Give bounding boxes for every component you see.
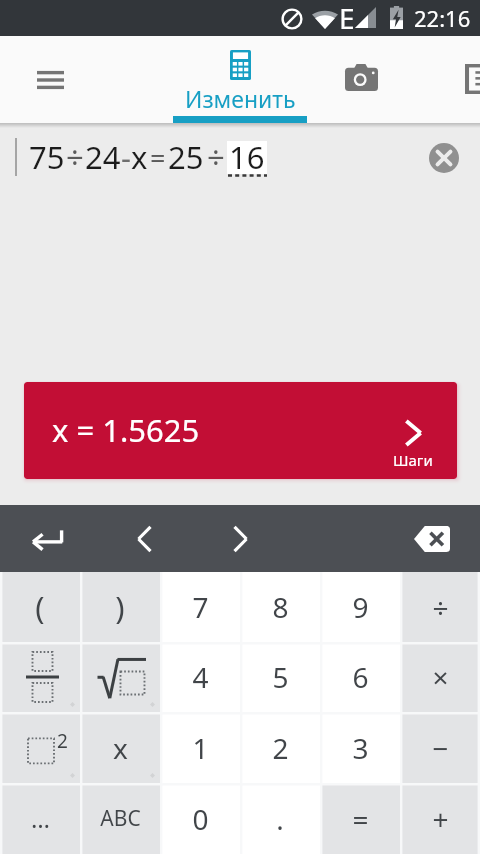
button[interactable]: (: [0, 572, 80, 642]
staticText: 7: [192, 588, 209, 626]
button[interactable]: Power: [0, 712, 80, 783]
staticText: 25: [168, 136, 204, 178]
button[interactable]: x: [80, 712, 160, 783]
staticText: ÷: [207, 136, 225, 178]
staticText: E: [339, 0, 355, 35]
button[interactable]: 4: [160, 642, 240, 712]
staticText: .: [276, 800, 284, 838]
button[interactable]: =: [320, 783, 400, 854]
button[interactable]: Previous: [96, 505, 192, 572]
staticText: …: [31, 802, 50, 835]
staticText: 6: [352, 658, 369, 696]
button[interactable]: ): [80, 572, 160, 642]
staticText: ABC: [100, 804, 141, 833]
staticText: 0: [192, 800, 209, 838]
staticText: =: [352, 800, 369, 838]
staticText: −: [432, 729, 449, 767]
staticText: 75: [29, 136, 65, 178]
button[interactable]: Square root: [80, 642, 160, 712]
button[interactable]: 8: [240, 572, 320, 642]
button[interactable]: 6: [320, 642, 400, 712]
staticText: x = 1.5625: [52, 409, 200, 451]
button[interactable]: 5: [240, 642, 320, 712]
staticText: Шаги: [393, 450, 433, 470]
button[interactable]: History: [463, 36, 480, 123]
staticText: 24: [85, 136, 121, 178]
button[interactable]: Изменить: [173, 36, 307, 123]
button[interactable]: 9: [320, 572, 400, 642]
button[interactable]: 2: [240, 712, 320, 783]
button[interactable]: Camera: [331, 36, 391, 123]
button[interactable]: +: [400, 783, 480, 854]
button[interactable]: .: [240, 783, 320, 854]
staticText: 1: [192, 729, 209, 767]
button[interactable]: Fraction: [0, 642, 80, 712]
button[interactable]: Clear: [429, 143, 459, 173]
staticText: =: [150, 139, 166, 176]
staticText: -: [121, 136, 131, 178]
staticText: 22:16: [414, 3, 471, 33]
staticText: 4: [192, 658, 209, 696]
staticText: 5: [272, 658, 289, 696]
staticText: ×: [432, 658, 449, 696]
staticText: x: [131, 136, 148, 178]
button[interactable]: 1: [160, 712, 240, 783]
button[interactable]: ABC: [80, 783, 160, 854]
button[interactable]: x = 1.5625: [24, 382, 457, 479]
button[interactable]: Next: [192, 505, 288, 572]
button[interactable]: Menu: [0, 36, 100, 123]
staticText: ÷: [66, 136, 84, 178]
button[interactable]: Enter: [0, 505, 96, 572]
staticText: ÷: [432, 588, 449, 626]
staticText: 16: [229, 136, 265, 178]
staticText: 9: [352, 588, 369, 626]
button[interactable]: Backspace: [384, 505, 480, 572]
staticText: 3: [352, 729, 369, 767]
button[interactable]: −: [400, 712, 480, 783]
staticText: Изменить: [185, 83, 296, 114]
staticText: +: [432, 800, 449, 838]
staticText: ): [115, 586, 125, 628]
staticText: (: [35, 586, 45, 628]
button[interactable]: 7: [160, 572, 240, 642]
button[interactable]: 3: [320, 712, 400, 783]
button[interactable]: ×: [400, 642, 480, 712]
staticText: 2: [57, 728, 68, 754]
button[interactable]: ÷: [400, 572, 480, 642]
staticText: x: [113, 729, 128, 767]
button[interactable]: …: [0, 783, 80, 854]
button[interactable]: 0: [160, 783, 240, 854]
staticText: 8: [272, 588, 289, 626]
staticText: 2: [272, 729, 289, 767]
